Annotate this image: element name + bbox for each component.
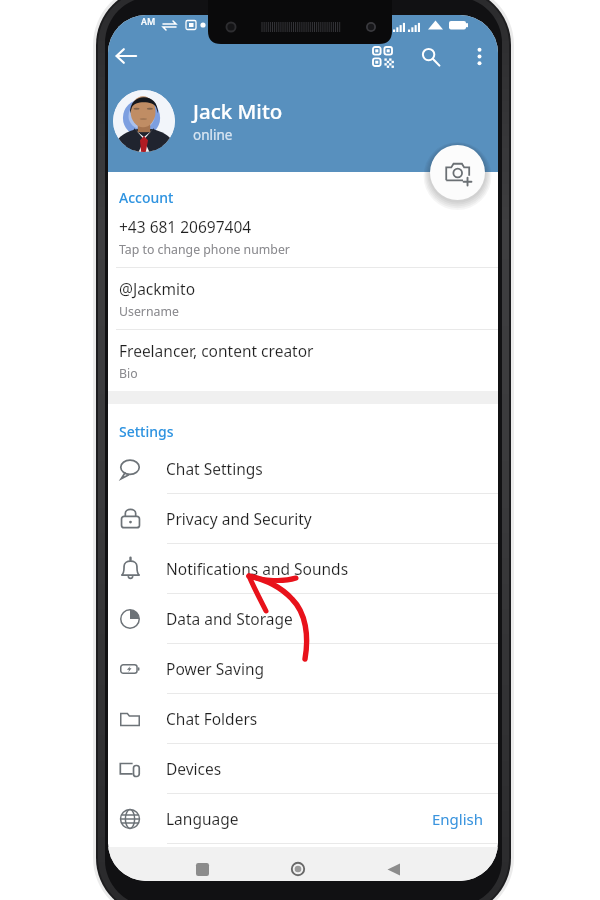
staticText: Account	[119, 188, 174, 207]
staticText: +43 681 20697404	[119, 216, 252, 237]
staticText: Notifications and Sounds	[166, 558, 349, 579]
button[interactable]: Profile photo	[113, 90, 175, 152]
button[interactable]: Recents	[180, 852, 224, 881]
staticText: Language	[166, 808, 239, 829]
button[interactable]: Notifications and Sounds	[108, 544, 498, 593]
button[interactable]: +43 681 20697404	[108, 206, 498, 267]
staticText: Chat Settings	[166, 458, 263, 479]
staticText: Jack Mito	[193, 97, 283, 125]
staticText: online	[193, 126, 233, 144]
staticText: Freelancer, content creator	[119, 340, 314, 361]
button[interactable]: Home	[276, 852, 320, 881]
button[interactable]: Data and Storage	[108, 594, 498, 643]
staticText: Devices	[166, 758, 222, 779]
staticText: Power Saving	[166, 658, 264, 679]
button[interactable]: Back	[371, 852, 415, 881]
button[interactable]: Chat Folders	[108, 694, 498, 743]
button[interactable]: Set profile photo	[430, 145, 485, 200]
staticText: AM	[141, 15, 156, 27]
button[interactable]: Privacy and Security	[108, 494, 498, 543]
staticText: Data and Storage	[166, 608, 293, 629]
staticText: Tap to change phone number	[119, 241, 290, 258]
button[interactable]: Search	[416, 42, 444, 70]
staticText: Chat Folders	[166, 708, 258, 729]
staticText: Settings	[119, 422, 174, 441]
button[interactable]: QR code	[368, 42, 396, 70]
staticText: English	[432, 809, 484, 829]
staticText: Username	[119, 303, 179, 320]
button[interactable]: Back	[111, 41, 141, 71]
staticText: Privacy and Security	[166, 508, 312, 529]
button[interactable]: Power Saving	[108, 644, 498, 693]
button[interactable]: Devices	[108, 744, 498, 793]
button[interactable]: Chat Settings	[108, 444, 498, 493]
staticText: @Jackmito	[119, 278, 196, 299]
button[interactable]: Freelancer, content creator	[108, 330, 498, 391]
button[interactable]: Language	[108, 794, 498, 843]
button[interactable]: @Jackmito	[108, 268, 498, 329]
staticText: Bio	[119, 365, 138, 382]
button[interactable]: More options	[465, 42, 493, 70]
